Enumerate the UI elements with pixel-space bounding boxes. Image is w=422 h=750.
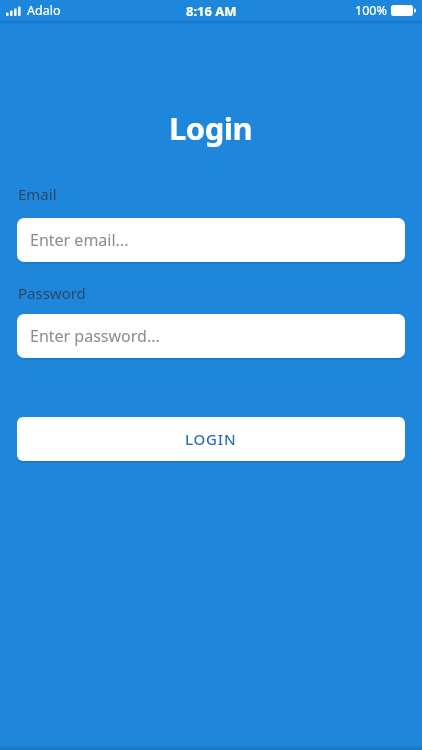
staticText: Enter password... (30, 325, 160, 347)
staticText: LOGIN (185, 429, 237, 449)
staticText: 8:16 AM (186, 2, 237, 20)
button[interactable]: Enter email... (17, 218, 405, 262)
staticText: Login (169, 107, 253, 149)
staticText: 100% (355, 2, 387, 19)
staticText: Email (18, 184, 57, 204)
staticText: Adalo (27, 2, 61, 19)
staticText: Password (18, 283, 86, 303)
button[interactable]: Enter password... (17, 314, 405, 358)
button[interactable]: LOGIN (17, 417, 405, 461)
staticText: Enter email... (30, 229, 129, 251)
